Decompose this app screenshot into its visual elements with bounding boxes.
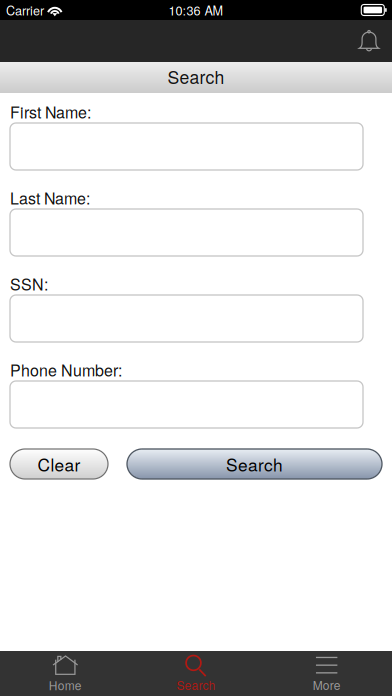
staticText: Last Name: [10, 186, 90, 209]
button[interactable]: Home [0, 651, 131, 696]
staticText: Home [49, 676, 82, 694]
staticText: Search [176, 676, 215, 693]
staticText: Phone Number: [10, 358, 122, 381]
staticText: More [313, 676, 341, 693]
button[interactable]: Search [131, 651, 261, 696]
staticText: Search [167, 64, 224, 89]
staticText: Carrier [6, 1, 44, 19]
staticText: SSN: [10, 272, 48, 295]
staticText: Search [226, 452, 283, 476]
button[interactable]: Notifications [346, 20, 392, 62]
button[interactable]: Search [127, 449, 382, 479]
staticText: 10:36 AM [168, 1, 223, 19]
staticText: Clear [37, 452, 80, 476]
button[interactable]: Clear [10, 449, 108, 479]
staticText: First Name: [10, 100, 91, 123]
button[interactable]: More [261, 651, 392, 696]
